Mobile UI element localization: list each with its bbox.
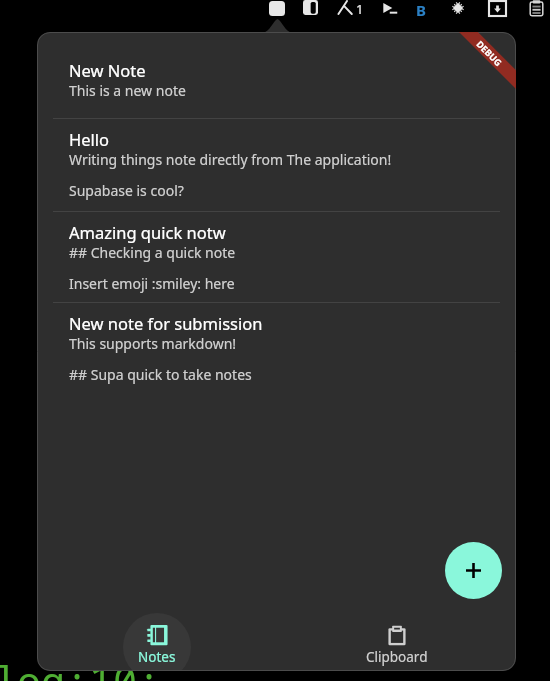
button[interactable]: Notes	[123, 613, 191, 671]
staticText: ## Supa quick to take notes	[69, 365, 252, 384]
button[interactable]: Add note	[445, 542, 502, 599]
staticText: B	[416, 0, 426, 20]
staticText: Clipboard	[366, 648, 428, 666]
staticText: New Note	[69, 59, 146, 81]
staticText: This is a new note	[69, 81, 186, 100]
staticText: Supabase is cool?	[69, 181, 184, 200]
button[interactable]: Terminal	[383, 3, 398, 14]
staticText: Hello	[69, 128, 110, 150]
button[interactable]: New Note	[37, 50, 516, 118]
button[interactable]: Hello	[37, 119, 516, 211]
staticText: ## Checking a quick note	[69, 243, 236, 262]
button[interactable]: Device settings	[447, 0, 469, 19]
staticText: Writing things note directly from The ap…	[69, 150, 392, 169]
staticText: New note for submission	[69, 312, 263, 334]
button[interactable]: Install app	[489, 1, 506, 16]
staticText: Insert emoji :smiley: here	[69, 274, 235, 293]
staticText: Notes	[138, 648, 176, 666]
staticText: 1	[356, 0, 364, 18]
button[interactable]: Layout inspector	[303, 0, 318, 15]
staticText: DEBUG	[474, 38, 505, 68]
button[interactable]: Amazing quick notw	[37, 212, 516, 302]
staticText: This supports markdown!	[69, 334, 237, 353]
button[interactable]: Screenshot	[269, 1, 285, 16]
staticText: Amazing quick notw	[69, 221, 226, 243]
button[interactable]: Clipboard	[528, 0, 545, 17]
button[interactable]: Logcat	[338, 1, 353, 14]
button[interactable]: New note for submission	[37, 303, 516, 393]
staticText: log:10:	[0, 653, 161, 681]
button[interactable]: Clipboard	[363, 613, 431, 671]
